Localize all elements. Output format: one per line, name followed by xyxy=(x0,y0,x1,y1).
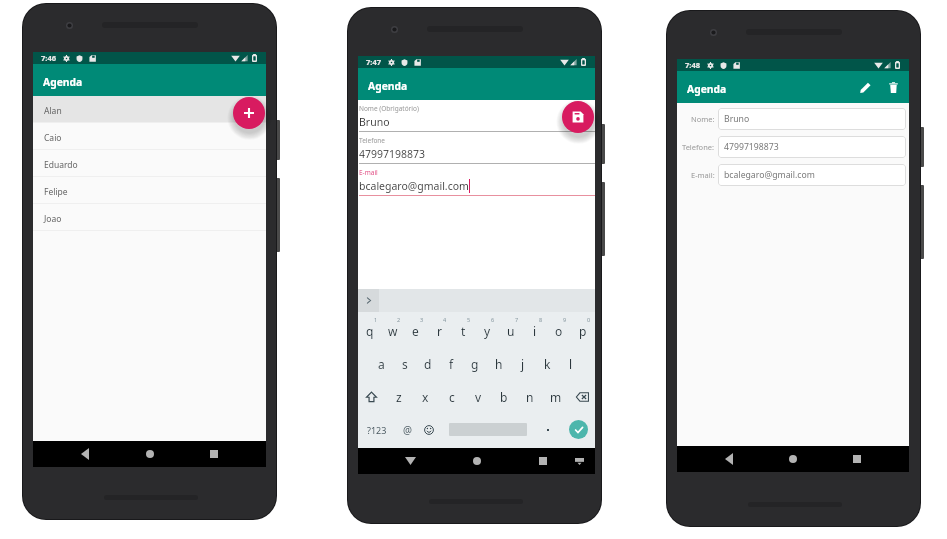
button[interactable]: ?123 xyxy=(358,413,396,446)
button[interactable]: 47997198873 xyxy=(724,136,906,158)
button[interactable]: Recents xyxy=(846,448,868,470)
staticText: 47997198873 xyxy=(359,147,426,161)
staticText: e xyxy=(412,323,419,339)
button[interactable]: Expand suggestions xyxy=(358,289,379,312)
staticText: 7:47 xyxy=(366,57,381,67)
staticText: k xyxy=(544,356,551,372)
staticText: m xyxy=(550,389,562,405)
staticText: 1 xyxy=(374,316,378,323)
button[interactable]: f xyxy=(439,347,463,380)
staticText: d xyxy=(424,356,432,372)
button[interactable]: Done xyxy=(561,413,595,446)
staticText: 4 xyxy=(443,316,447,323)
staticText: bcalegaro@gmail.com xyxy=(724,169,815,181)
staticText: bcalegaro@gmail.com xyxy=(359,179,469,193)
staticText: E-mail xyxy=(359,168,378,177)
staticText: Alan xyxy=(44,105,62,117)
staticText: z xyxy=(396,389,402,405)
button[interactable] xyxy=(535,413,561,446)
button[interactable]: h xyxy=(487,347,511,380)
button[interactable]: l xyxy=(559,347,583,380)
button[interactable]: Hide keyboard xyxy=(570,452,588,470)
button[interactable]: d xyxy=(416,347,439,380)
button[interactable]: Recents xyxy=(203,443,225,465)
button[interactable]: Edit xyxy=(854,76,876,98)
staticText: g xyxy=(471,356,479,372)
button[interactable]: Back xyxy=(399,450,421,472)
staticText: 0 xyxy=(587,316,591,323)
staticText: j xyxy=(521,356,525,372)
button[interactable]: Alan xyxy=(33,96,266,123)
staticText: w xyxy=(388,323,398,339)
button[interactable]: bcalegaro@gmail.com xyxy=(724,164,906,186)
staticText: E-mail: xyxy=(691,170,715,180)
staticText: t xyxy=(461,323,466,339)
button[interactable]: k xyxy=(535,347,559,380)
button[interactable]: t xyxy=(451,314,475,347)
button[interactable]: Eduardo xyxy=(33,150,266,177)
button[interactable]: Add contact xyxy=(233,97,265,129)
button[interactable]: @ xyxy=(396,413,418,446)
staticText: f xyxy=(449,356,454,372)
staticText: Bruno xyxy=(359,115,390,129)
staticText: p xyxy=(579,323,587,339)
button[interactable]: Home xyxy=(782,448,804,470)
button[interactable]: p xyxy=(571,314,595,347)
button[interactable]: y xyxy=(475,314,499,347)
staticText: Agenda xyxy=(43,75,83,89)
staticText: i xyxy=(533,323,537,339)
staticText: r xyxy=(437,323,442,339)
button[interactable]: b xyxy=(491,380,517,413)
button[interactable]: Felipe xyxy=(33,177,266,204)
button[interactable]: Back xyxy=(74,443,96,465)
staticText: Telefone xyxy=(359,136,386,145)
button[interactable]: r xyxy=(427,314,451,347)
button[interactable]: j xyxy=(511,347,535,380)
staticText: 8 xyxy=(539,316,543,323)
button[interactable]: Recents xyxy=(532,450,554,472)
button[interactable]: e xyxy=(404,314,427,347)
staticText: n xyxy=(526,389,534,405)
button[interactable]: s xyxy=(393,347,416,380)
button[interactable]: m xyxy=(543,380,569,413)
staticText: x xyxy=(422,389,429,405)
staticText: b xyxy=(500,389,508,405)
button[interactable]: z xyxy=(385,380,412,413)
button[interactable]: Backspace xyxy=(569,380,595,413)
staticText: h xyxy=(495,356,503,372)
button[interactable]: Home xyxy=(139,443,161,465)
button[interactable]: n xyxy=(517,380,543,413)
button[interactable]: q xyxy=(358,314,381,347)
staticText: l xyxy=(569,356,573,372)
button[interactable]: Delete xyxy=(882,76,904,98)
button[interactable]: v xyxy=(465,380,491,413)
button[interactable]: Save contact xyxy=(562,101,594,133)
button[interactable]: Bruno xyxy=(724,108,906,130)
button[interactable]: Home xyxy=(466,450,488,472)
button[interactable]: u xyxy=(499,314,523,347)
staticText: 47997198873 xyxy=(724,141,779,153)
staticText: Agenda xyxy=(368,79,408,93)
button[interactable]: w xyxy=(381,314,404,347)
staticText: 3 xyxy=(420,316,424,323)
button[interactable]: x xyxy=(412,380,439,413)
staticText: @ xyxy=(403,423,412,437)
staticText: o xyxy=(555,323,563,339)
button[interactable]: a xyxy=(370,347,393,380)
staticText: Nome (Obrigatório) xyxy=(359,104,419,113)
button[interactable]: Caio xyxy=(33,123,266,150)
button[interactable]: Back xyxy=(718,448,740,470)
button[interactable]: Emoji xyxy=(418,413,440,446)
button[interactable]: o xyxy=(547,314,571,347)
staticText: Agenda xyxy=(687,82,727,96)
button[interactable]: i xyxy=(523,314,547,347)
button[interactable]: Shift xyxy=(358,380,385,413)
staticText: q xyxy=(366,323,374,339)
staticText: s xyxy=(402,356,408,372)
button[interactable]: c xyxy=(439,380,465,413)
button[interactable]: g xyxy=(463,347,487,380)
button[interactable]: Joao xyxy=(33,204,266,231)
button[interactable]: Space xyxy=(440,413,535,446)
staticText: Felipe xyxy=(44,186,68,198)
staticText: y xyxy=(484,323,491,339)
